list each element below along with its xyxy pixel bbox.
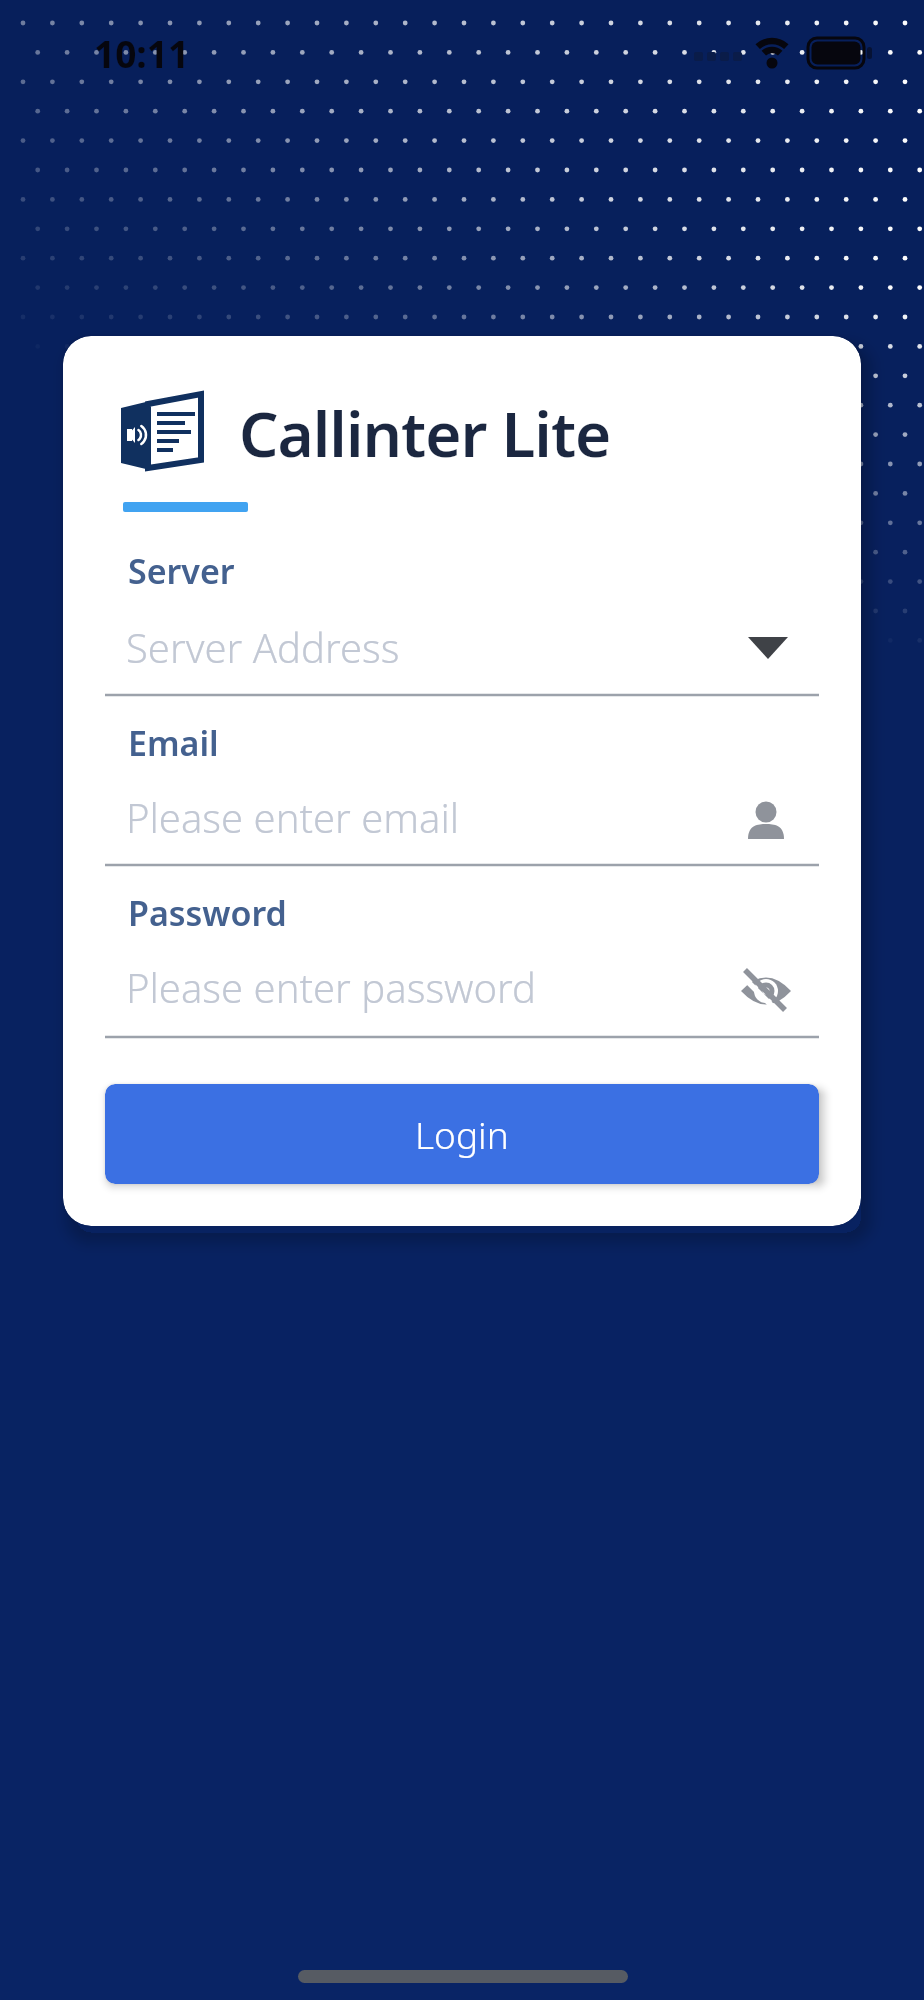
button[interactable]: Please enter email: [105, 782, 819, 866]
staticText: Server Address: [126, 620, 400, 674]
button[interactable]: Please enter password: [105, 952, 819, 1036]
staticText: Server: [128, 548, 235, 594]
staticText: Password: [128, 890, 287, 936]
button[interactable]: Login: [105, 1084, 819, 1184]
staticText: Callinter Lite: [239, 391, 611, 475]
staticText: Email: [128, 720, 219, 766]
staticText: Please enter email: [126, 790, 460, 844]
staticText: 10:11: [94, 28, 190, 78]
button[interactable]: Server Address: [105, 612, 819, 696]
staticText: Please enter password: [126, 960, 537, 1014]
staticText: Login: [415, 1109, 509, 1159]
